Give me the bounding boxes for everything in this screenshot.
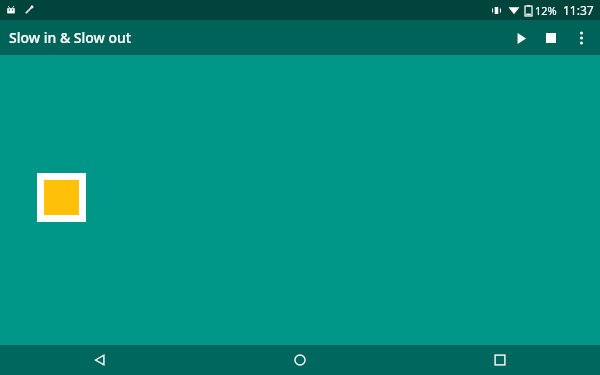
button[interactable]: Recent apps [400,345,600,375]
staticText: 11:37 [563,2,594,18]
button[interactable]: Stop [536,23,566,53]
button[interactable]: Back [0,345,200,375]
button[interactable]: Play [506,23,536,53]
button[interactable]: Home [200,345,400,375]
staticText: Slow in & Slow out [9,28,132,47]
button[interactable]: More options [566,23,596,53]
staticText: 12% [535,3,557,18]
